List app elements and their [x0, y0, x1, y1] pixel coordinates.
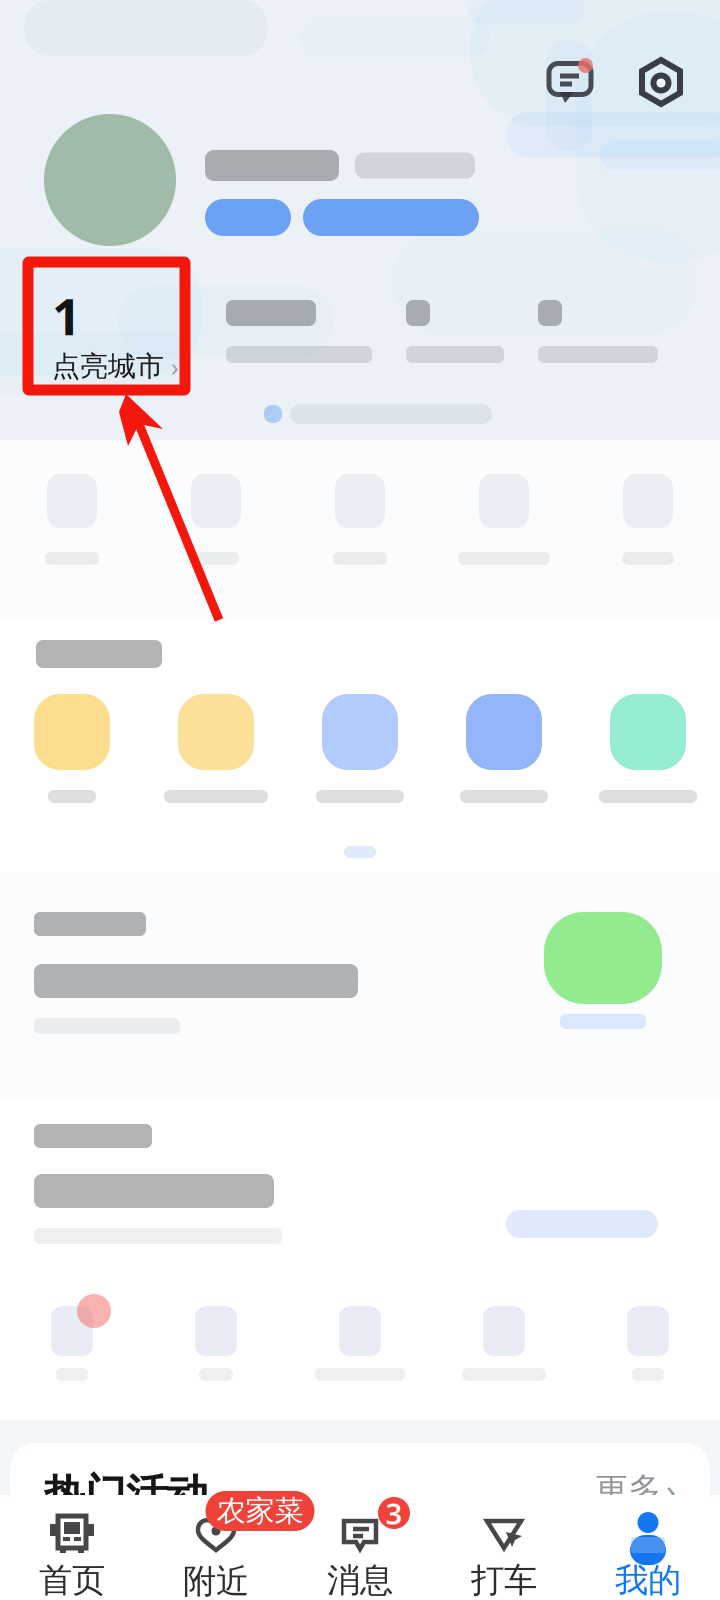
- button[interactable]: [288, 694, 432, 803]
- staticText: ›: [666, 1469, 676, 1511]
- button[interactable]: 附近: [144, 1495, 288, 1600]
- staticText: 打车: [471, 1560, 537, 1600]
- button[interactable]: [0, 1270, 144, 1420]
- staticText: 热门活动: [44, 1469, 208, 1520]
- button[interactable]: [576, 1270, 720, 1420]
- button[interactable]: 消息: [288, 1495, 432, 1600]
- button[interactable]: [0, 872, 720, 1100]
- staticText: 我的: [615, 1560, 681, 1600]
- button[interactable]: 更多: [595, 1469, 676, 1511]
- staticText: 消息: [327, 1560, 393, 1600]
- button[interactable]: [144, 440, 288, 620]
- button[interactable]: [144, 694, 288, 803]
- button[interactable]: [432, 694, 576, 803]
- staticText: 首页: [39, 1560, 105, 1600]
- staticText: 点亮城市: [52, 349, 164, 384]
- button[interactable]: [0, 694, 144, 803]
- staticText: 农家菜: [216, 1493, 303, 1529]
- staticText: 1: [52, 282, 81, 349]
- button[interactable]: [144, 1270, 288, 1420]
- button[interactable]: 首页: [0, 1495, 144, 1600]
- button[interactable]: 打车: [432, 1495, 576, 1600]
- button[interactable]: 消息: [542, 56, 598, 110]
- button[interactable]: [0, 1100, 720, 1270]
- staticText: 附近: [183, 1561, 249, 1600]
- button[interactable]: 我的: [576, 1495, 720, 1600]
- staticText: ›: [171, 350, 179, 383]
- button[interactable]: [576, 440, 720, 620]
- staticText: 更多: [595, 1470, 661, 1511]
- button[interactable]: [288, 440, 432, 620]
- button[interactable]: 1: [26, 262, 226, 398]
- button[interactable]: [0, 440, 144, 620]
- button[interactable]: [288, 1270, 432, 1420]
- button[interactable]: [432, 440, 576, 620]
- button[interactable]: [432, 1270, 576, 1420]
- button[interactable]: [576, 694, 720, 803]
- staticText: 3: [385, 1493, 402, 1532]
- button[interactable]: 设置: [636, 56, 686, 110]
